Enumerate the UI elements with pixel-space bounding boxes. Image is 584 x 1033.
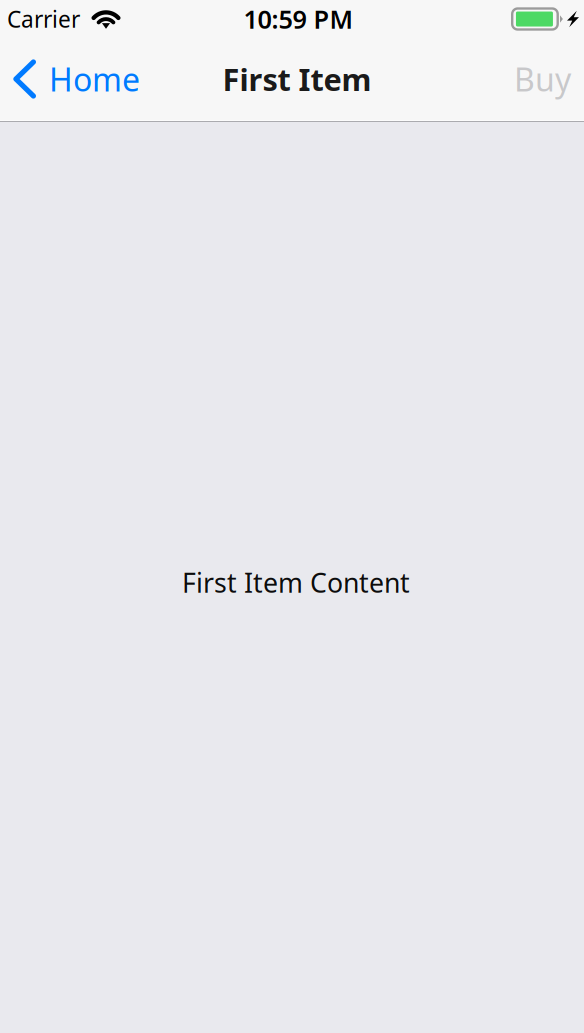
staticText: Home [49,58,140,100]
staticText: First Item Content [182,565,410,600]
staticText: 10:59 PM [243,2,353,36]
staticText: Buy [514,58,571,100]
button[interactable]: Back to Home [0,48,150,110]
button[interactable]: Buy [498,48,584,110]
staticText: Carrier [7,4,80,34]
staticText: First Item [222,59,371,99]
